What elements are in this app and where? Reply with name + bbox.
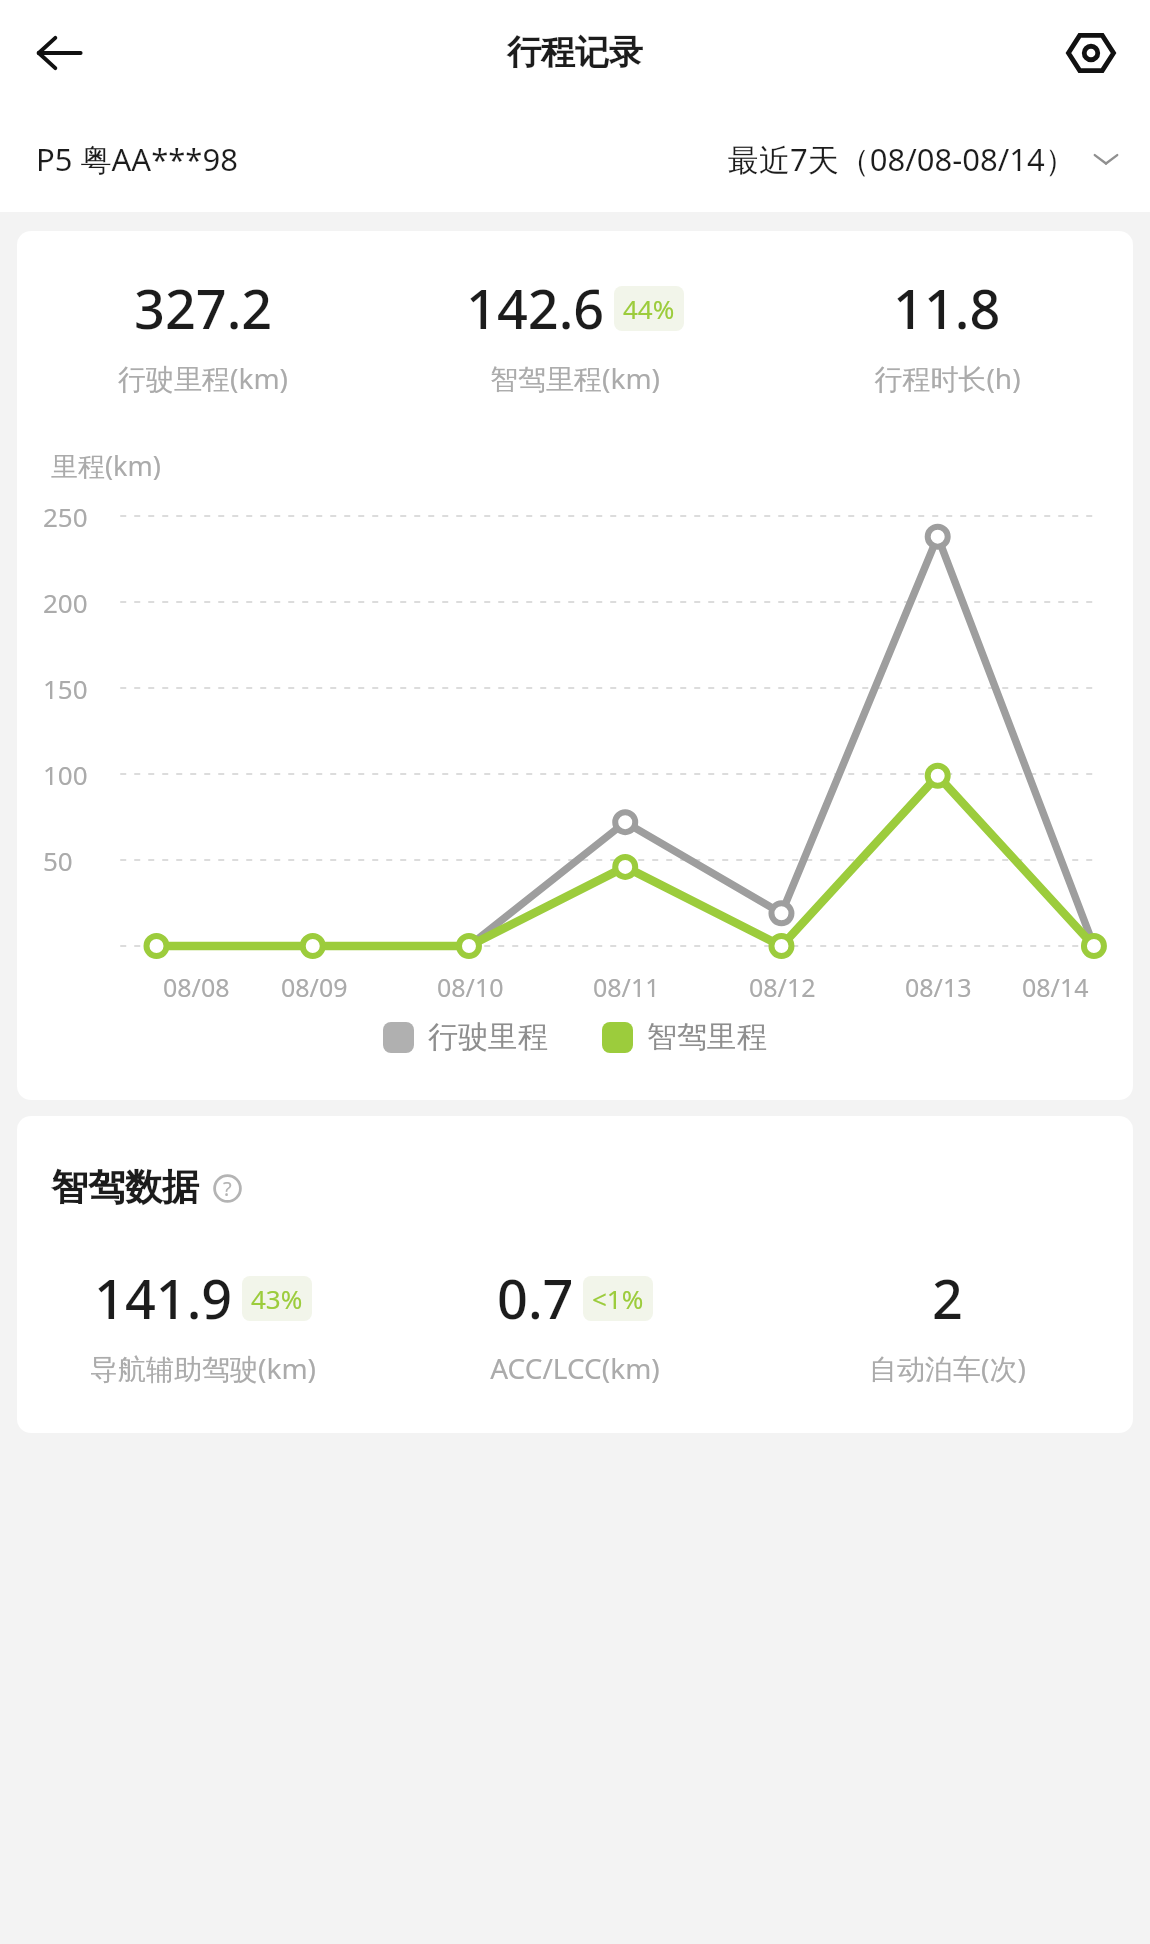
button[interactable]: 智驾里程: [602, 1018, 767, 1056]
staticText: 100: [43, 757, 88, 792]
button[interactable]: Settings: [1058, 20, 1124, 86]
staticText: 50: [43, 843, 73, 878]
staticText: ?: [223, 1175, 232, 1202]
staticText: 200: [43, 585, 88, 620]
staticText: 智驾里程: [647, 1018, 767, 1056]
staticText: 327.2: [134, 271, 273, 345]
staticText: 行驶里程(km): [118, 359, 288, 397]
staticText: 最近7天（08/08-08/14）: [728, 138, 1076, 180]
button[interactable]: Info: [209, 1170, 245, 1206]
staticText: 08/08: [163, 970, 230, 1004]
button[interactable]: 行驶里程: [383, 1018, 548, 1056]
staticText: 里程(km): [51, 447, 161, 484]
staticText: 行程时长(h): [874, 359, 1021, 397]
staticText: 141.9: [94, 1261, 233, 1335]
staticText: 08/10: [437, 970, 504, 1004]
staticText: P5 粤AA***98: [36, 138, 238, 180]
staticText: ACC/LCC(km): [490, 1349, 660, 1387]
staticText: 08/11: [593, 970, 660, 1004]
staticText: 11.8: [893, 271, 1001, 345]
staticText: 150: [43, 671, 88, 706]
staticText: 142.6: [466, 271, 605, 345]
button[interactable]: Back: [26, 20, 92, 86]
staticText: 250: [43, 499, 88, 534]
staticText: 43%: [251, 1281, 303, 1316]
staticText: 智驾数据: [51, 1164, 199, 1211]
staticText: 08/13: [905, 970, 972, 1004]
staticText: 08/12: [749, 970, 816, 1004]
staticText: 行驶里程: [428, 1018, 548, 1056]
staticText: 2: [932, 1261, 963, 1335]
button[interactable]: 最近7天（08/08-08/14）: [722, 128, 1126, 190]
staticText: 智驾里程(km): [490, 359, 660, 397]
staticText: <1%: [592, 1281, 644, 1316]
staticText: 0.7: [497, 1261, 574, 1335]
staticText: 08/09: [281, 970, 348, 1004]
staticText: 导航辅助驾驶(km): [90, 1349, 316, 1387]
staticText: 行程记录: [507, 31, 643, 74]
staticText: 自动泊车(次): [869, 1349, 1026, 1387]
staticText: 08/14: [1022, 970, 1089, 1004]
staticText: 44%: [623, 291, 675, 326]
